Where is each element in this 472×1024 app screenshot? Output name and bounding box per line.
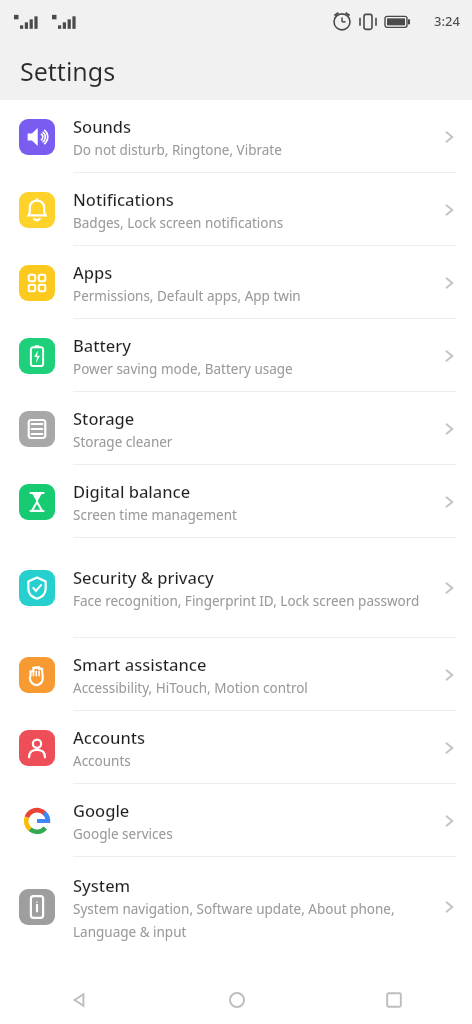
staticText: Power saving mode, Battery usage <box>73 360 293 378</box>
button[interactable]: Apps <box>0 246 472 319</box>
staticText: Security & privacy <box>73 566 214 588</box>
button[interactable]: System <box>0 857 472 957</box>
staticText: Google <box>73 799 130 821</box>
staticText: Screen time management <box>73 506 237 524</box>
staticText: Accounts <box>73 752 131 770</box>
staticText: Do not disturb, Ringtone, Vibrate <box>73 141 282 159</box>
button[interactable]: Home <box>158 975 315 1024</box>
staticText: Badges, Lock screen notifications <box>73 214 284 232</box>
button[interactable]: Accounts <box>0 711 472 784</box>
staticText: Accessibility, HiTouch, Motion control <box>73 679 308 697</box>
staticText: Apps <box>73 261 113 283</box>
button[interactable]: Security & privacy <box>0 538 472 638</box>
button[interactable]: Smart assistance <box>0 638 472 711</box>
staticText: Digital balance <box>73 480 191 502</box>
staticText: Storage cleaner <box>73 433 173 451</box>
button[interactable]: Back <box>0 975 158 1024</box>
staticText: Storage <box>73 407 135 429</box>
staticText: 3:24 <box>434 12 460 30</box>
staticText: Sounds <box>73 115 132 137</box>
staticText: Permissions, Default apps, App twin <box>73 287 301 305</box>
button[interactable]: Storage <box>0 392 472 465</box>
staticText: Accounts <box>73 726 146 748</box>
button[interactable]: Recent apps <box>315 975 472 1024</box>
staticText: Notifications <box>73 188 174 210</box>
staticText: Smart assistance <box>73 653 207 675</box>
staticText: Battery <box>73 334 132 356</box>
staticText: Face recognition, Fingerprint ID, Lock s… <box>73 592 420 610</box>
button[interactable]: Notifications <box>0 173 472 246</box>
button[interactable]: Battery <box>0 319 472 392</box>
staticText: Google services <box>73 825 173 843</box>
button[interactable]: Google <box>0 784 472 857</box>
staticText: System <box>73 874 131 896</box>
staticText: Settings <box>20 54 116 88</box>
button[interactable]: Sounds <box>0 100 472 173</box>
button[interactable]: Digital balance <box>0 465 472 538</box>
staticText: System navigation, Software update, Abou… <box>73 900 426 941</box>
